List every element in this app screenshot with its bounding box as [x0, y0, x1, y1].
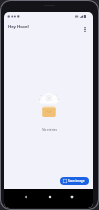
staticText: Scan image — [68, 179, 85, 183]
button[interactable]: More options — [79, 24, 90, 35]
button[interactable]: Recent apps — [66, 191, 78, 203]
staticText: No entries — [42, 128, 57, 132]
button[interactable]: Scan image — [60, 177, 89, 185]
button[interactable]: Back — [20, 191, 32, 203]
staticText: Hey Hocel — [8, 24, 29, 30]
button[interactable]: Home — [44, 191, 56, 203]
